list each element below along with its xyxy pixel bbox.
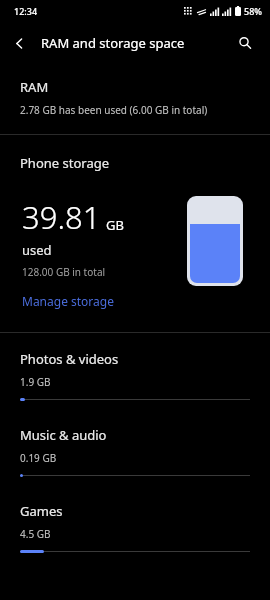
staticText: RAM (20, 78, 49, 96)
staticText: used (22, 241, 52, 259)
button[interactable]: Search (227, 25, 263, 61)
staticText: Music & audio (20, 426, 107, 444)
staticText: RAM and storage space (41, 34, 185, 52)
staticText: 4.5 GB (20, 527, 51, 541)
staticText: 0.19 GB (20, 451, 57, 465)
button[interactable]: Manage storage (22, 293, 114, 309)
staticText: Photos & videos (20, 350, 119, 368)
button[interactable]: Games (0, 485, 270, 561)
staticText: 1.9 GB (20, 375, 51, 389)
button[interactable]: Photos & videos (0, 333, 270, 409)
staticText: 12:34 (14, 5, 38, 17)
staticText: GB (106, 216, 124, 234)
button[interactable]: Music & audio (0, 409, 270, 485)
staticText: 39.81 (22, 196, 101, 238)
staticText: Games (20, 502, 63, 520)
staticText: 58% (244, 5, 262, 17)
staticText: Manage storage (22, 293, 114, 309)
staticText: 128.00 GB in total (22, 265, 106, 279)
button[interactable]: RAM (0, 78, 270, 117)
staticText: 2.78 GB has been used (6.00 GB in total) (20, 103, 208, 117)
button[interactable]: Back (0, 24, 38, 62)
staticText: Phone storage (20, 154, 110, 172)
